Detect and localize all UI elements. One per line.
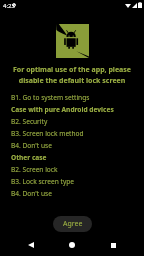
staticText: B3. Lock screen type — [11, 177, 75, 186]
button[interactable]: Back — [19, 234, 43, 256]
button[interactable]: Agree — [53, 216, 92, 232]
staticText: Case with pure Android devices — [11, 105, 114, 114]
staticText: B4. Don't use — [11, 189, 52, 198]
staticText: B2. Screen lock — [11, 165, 58, 174]
staticText: 4:23 — [3, 2, 15, 10]
button[interactable]: Recent apps — [101, 234, 125, 256]
button[interactable]: Home — [60, 234, 84, 256]
staticText: B4. Don't use — [11, 141, 52, 150]
staticText: Other case — [11, 153, 47, 162]
staticText: Agree — [63, 219, 83, 229]
staticText: B2. Security — [11, 117, 48, 126]
staticText: B3. Screen lock method — [11, 129, 84, 138]
staticText: For optimal use of the app, please disab… — [0, 65, 144, 85]
staticText: B1. Go to system settings — [11, 93, 90, 102]
